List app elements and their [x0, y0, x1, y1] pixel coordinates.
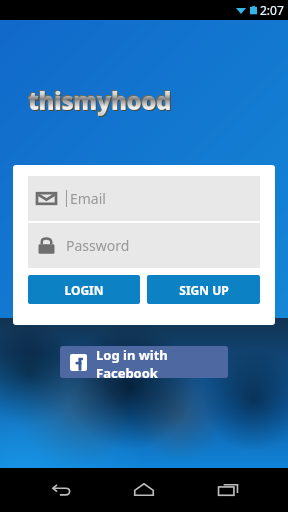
staticText: thismyhood — [27, 83, 171, 116]
button[interactable]: SIGN UP — [147, 275, 260, 304]
staticText: Email — [70, 189, 106, 208]
button[interactable]: Back — [38, 468, 84, 512]
staticText: thismyhood — [28, 84, 172, 117]
staticText: Password — [66, 236, 130, 255]
staticText: 2:07 — [260, 2, 284, 18]
button[interactable]: Home — [121, 468, 167, 512]
staticText: LOGIN — [64, 282, 104, 298]
button[interactable]: Log in with Facebook — [60, 346, 228, 378]
button[interactable]: LOGIN — [28, 275, 140, 304]
staticText: Log in with Facebook — [96, 346, 218, 378]
staticText: thismyhood — [29, 85, 173, 118]
button[interactable]: Email — [28, 176, 260, 221]
staticText: SIGN UP — [179, 282, 229, 298]
button[interactable]: Recent apps — [205, 468, 251, 512]
button[interactable]: Password — [28, 223, 260, 268]
